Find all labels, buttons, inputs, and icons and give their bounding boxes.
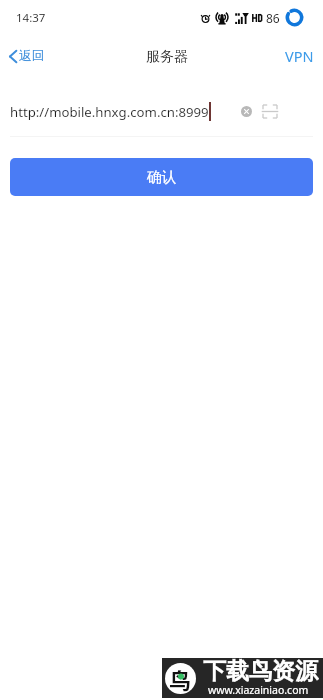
- staticText: 下载鸟资源: [203, 657, 318, 686]
- staticText: 鸟: [169, 663, 192, 694]
- staticText: VPN: [285, 46, 314, 66]
- staticText: 86: [266, 10, 280, 26]
- staticText: 确认: [147, 168, 177, 187]
- staticText: http://mobile.hnxg.com.cn:8999: [10, 103, 209, 121]
- staticText: www.xiazainiao.com: [208, 683, 309, 697]
- staticText: 14:37: [16, 10, 46, 26]
- button[interactable]: VPN: [276, 39, 323, 73]
- button[interactable]: 确认: [10, 158, 313, 196]
- button[interactable]: 返回: [0, 42, 55, 70]
- button[interactable]: Scan QR code: [259, 100, 281, 122]
- button[interactable]: Clear: [235, 100, 257, 122]
- staticText: 返回: [19, 48, 45, 64]
- staticText: 服务器: [146, 48, 188, 66]
